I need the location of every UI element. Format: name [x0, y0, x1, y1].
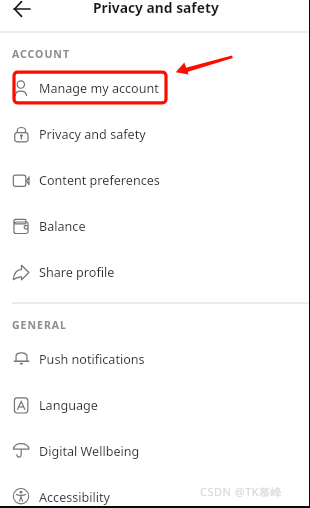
staticText: Privacy and safety: [93, 0, 219, 17]
button[interactable]: Privacy and safety: [0, 111, 310, 157]
staticText: ACCOUNT: [12, 47, 70, 61]
staticText: Manage my account: [39, 80, 159, 97]
button[interactable]: Share profile: [0, 249, 310, 295]
button[interactable]: Push notifications: [0, 336, 310, 382]
staticText: Digital Wellbeing: [39, 443, 140, 460]
staticText: Privacy and safety: [39, 126, 146, 143]
staticText: Accessibility: [39, 489, 111, 506]
staticText: CSDN @TK慕峰: [200, 484, 283, 499]
staticText: Share profile: [39, 264, 115, 281]
button[interactable]: Back: [6, 0, 38, 25]
button[interactable]: Balance: [0, 203, 310, 249]
button[interactable]: Language: [0, 382, 310, 428]
staticText: GENERAL: [12, 318, 67, 332]
button[interactable]: Manage my account: [0, 65, 310, 111]
staticText: Language: [39, 397, 98, 414]
staticText: Balance: [39, 218, 86, 235]
staticText: Content preferences: [39, 172, 160, 189]
staticText: Push notifications: [39, 351, 145, 368]
button[interactable]: Digital Wellbeing: [0, 428, 310, 474]
button[interactable]: Content preferences: [0, 157, 310, 203]
button[interactable]: Accessibility: [0, 474, 310, 508]
